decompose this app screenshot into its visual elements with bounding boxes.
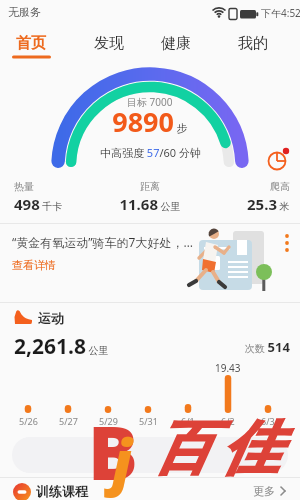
staticText: 爬高: [270, 180, 290, 193]
staticText: “黄金有氧运动”骑车的7大好处，…: [12, 234, 193, 250]
staticText: 我的: [238, 34, 268, 53]
staticText: 首页: [16, 34, 46, 53]
staticText: 9890 步: [112, 103, 188, 140]
staticText: 5/29: [99, 415, 118, 427]
button[interactable]: [12, 437, 288, 473]
button[interactable]: [0, 224, 300, 302]
button[interactable]: 我的: [222, 26, 284, 60]
button[interactable]: [0, 306, 300, 431]
button[interactable]: 查看详情: [12, 258, 72, 278]
button[interactable]: 健康: [145, 26, 207, 60]
staticText: 5/31: [139, 415, 158, 427]
staticText: 11.68 公里: [119, 194, 181, 214]
staticText: 更多: [253, 484, 275, 498]
staticText: 查看详情: [12, 258, 56, 272]
staticText: 25.3 米: [247, 194, 290, 214]
staticText: 中高强度 57/60 分钟: [100, 145, 201, 160]
staticText: 热量: [14, 180, 34, 193]
staticText: 6/3: [261, 415, 275, 427]
staticText: 6/1: [181, 415, 195, 427]
staticText: 5/26: [19, 415, 38, 427]
button[interactable]: 首页: [0, 26, 62, 60]
staticText: 5/27: [59, 415, 78, 427]
staticText: 发现: [94, 34, 124, 53]
staticText: 次数 514: [245, 338, 290, 356]
staticText: 运动: [38, 310, 64, 326]
staticText: 百佳: [148, 412, 284, 485]
staticText: 6/2: [221, 415, 235, 427]
staticText: 目标 7000: [127, 95, 173, 109]
staticText: B: [88, 401, 138, 500]
staticText: 无服务: [8, 5, 41, 19]
button[interactable]: [0, 478, 300, 500]
staticText: 下午4:52: [261, 6, 300, 20]
staticText: j: [112, 420, 132, 500]
button[interactable]: 发现: [78, 26, 140, 60]
staticText: 健康: [161, 34, 191, 53]
staticText: 训练课程: [36, 483, 88, 499]
staticText: 498 千卡: [14, 194, 63, 214]
staticText: 2,261.8 公里: [14, 332, 109, 361]
staticText: 距离: [140, 180, 160, 193]
staticText: 19.43: [215, 361, 241, 375]
